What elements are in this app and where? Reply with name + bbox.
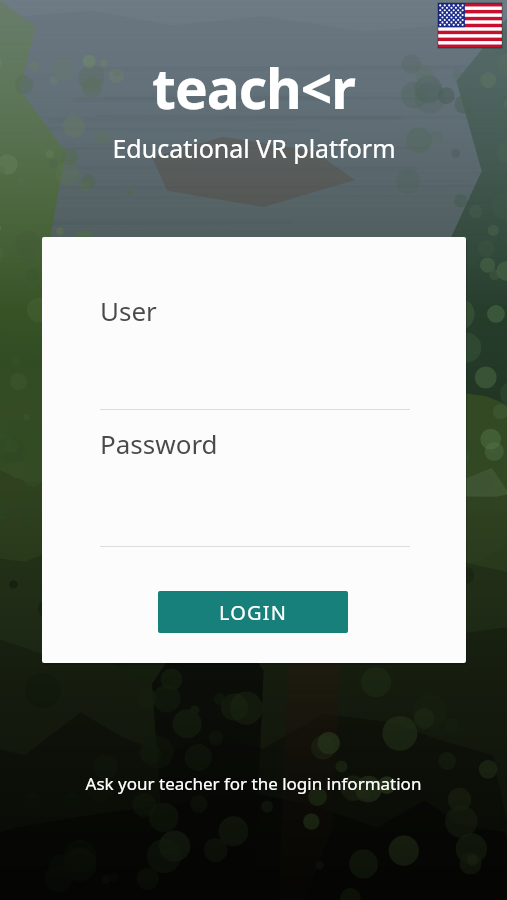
staticText: Password xyxy=(100,426,218,461)
button[interactable]: User xyxy=(100,293,410,355)
button[interactable]: Password xyxy=(100,426,410,488)
staticText: LOGIN xyxy=(219,599,288,626)
staticText: Educational VR platform xyxy=(112,131,396,165)
button[interactable]: LOGIN xyxy=(158,591,348,633)
staticText: User xyxy=(100,293,157,328)
button[interactable]: Change language: English (US) xyxy=(438,3,502,48)
staticText: Ask your teacher for the login informati… xyxy=(0,772,507,795)
staticText: teach<r xyxy=(152,50,355,125)
